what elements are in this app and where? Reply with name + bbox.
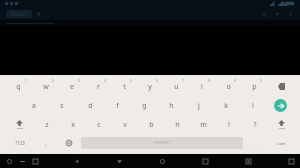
button[interactable]: f [104,96,131,115]
button[interactable]: 3 [59,77,85,96]
button[interactable]: c [86,115,112,134]
staticText: ?123 [15,140,25,146]
button[interactable]: s [48,96,76,115]
staticText: a [32,101,36,111]
staticText: 5 [130,78,132,83]
button[interactable]: ?123 [5,134,34,152]
staticText: QWERTY [154,140,171,146]
staticText: ! [228,120,230,130]
button[interactable]: More options [286,10,294,18]
staticText: w [43,82,49,92]
button[interactable]: 5 [111,77,137,96]
staticText: 9 [234,78,236,83]
button[interactable]: x [60,115,86,134]
button[interactable]: Power [4,156,14,166]
button[interactable]: m [190,115,216,134]
staticText: x [71,120,75,130]
staticText: b [149,120,154,130]
staticText: t [123,82,126,92]
button[interactable]: j [185,96,212,115]
button[interactable]: 6 [137,77,163,96]
staticText: . [255,140,257,147]
staticText: 0 [260,78,262,83]
staticText: 1 [25,78,27,83]
staticText: ? [253,120,257,130]
button[interactable]: Shift [5,115,33,134]
button[interactable]: Search [260,10,268,18]
button[interactable]: Rotate [243,156,253,166]
staticText: g [142,101,147,111]
button[interactable]: Home [157,156,167,166]
staticText: u [174,82,179,92]
button[interactable]: Keyboard [286,156,296,166]
staticText: q [16,82,21,92]
button[interactable]: h [158,96,185,115]
button[interactable]: l [239,96,266,115]
staticText: h [169,101,174,111]
staticText: z [45,120,49,130]
button[interactable]: Back [114,156,124,166]
staticText: n [175,120,180,130]
staticText: , [45,140,47,147]
button[interactable]: z [33,115,60,134]
button[interactable]: v [112,115,138,134]
button[interactable]: Change language [57,134,80,152]
button[interactable]: d [76,96,104,115]
button[interactable]: 0 [241,77,267,96]
button[interactable]: k [212,96,239,115]
staticText: j [198,101,200,111]
button[interactable]: g [131,96,158,115]
button[interactable]: Screenshot [30,156,40,166]
staticText: k [224,101,228,111]
button[interactable]: 8 [189,77,215,96]
button[interactable]: ? [242,115,268,134]
button[interactable]: Backspace [267,77,295,96]
staticText: i [201,82,203,92]
staticText: 2 [52,78,54,83]
staticText: l [252,101,254,111]
staticText: e [70,82,74,92]
button[interactable]: Enter [266,96,295,115]
staticText: o [226,82,231,92]
button[interactable]: 7 [163,77,189,96]
button[interactable]: Add device [36,11,42,17]
button[interactable]: 4 [85,77,111,96]
button[interactable]: Recents [200,156,210,166]
button[interactable]: Minimise [17,156,27,166]
button[interactable]: Device 1 [6,10,32,18]
staticText: m [200,120,207,130]
staticText: f [116,101,119,111]
button[interactable]: Shift right [268,115,295,134]
button[interactable]: .com [267,134,295,152]
staticText: 4 [104,78,106,83]
staticText: r [97,82,100,92]
staticText: s [60,101,64,111]
button[interactable]: n [164,115,190,134]
button[interactable]: Filter [273,10,281,18]
staticText: Device 1 [10,11,28,17]
staticText: 8 [208,78,210,83]
staticText: y [148,82,152,92]
staticText: 3 [78,78,80,83]
button[interactable]: b [138,115,164,134]
button[interactable]: 9 [215,77,241,96]
staticText: 7 [182,78,184,83]
staticText: p [252,82,257,92]
button[interactable]: a [20,96,48,115]
button[interactable]: 1 [5,77,32,96]
button[interactable]: ! [216,115,242,134]
staticText: 6 [156,78,158,83]
staticText: v [123,120,127,130]
staticText: .com [276,141,286,146]
button[interactable]: 2 [32,77,59,96]
button[interactable]: Volume [72,156,82,166]
staticText: d [88,101,93,111]
staticText: c [97,120,101,130]
